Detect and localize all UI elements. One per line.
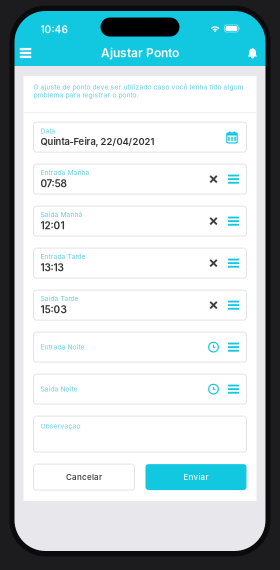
staticText: Saída Manhã [40,211,82,219]
button[interactable]: Cancelar [33,464,134,490]
staticText: Data [40,127,55,135]
staticText: Saída Tarde [40,295,78,303]
button[interactable]: Opções Saída Noite [227,383,239,395]
staticText: O ajuste de ponto deve ser utilizado cas… [33,83,243,99]
button[interactable]: Limpar Saída Tarde [207,299,219,311]
button[interactable]: Opções Entrada Noite [227,341,239,353]
button[interactable]: Selecionar hora Saída Noite [207,383,219,395]
staticText: 10:46 [40,23,67,36]
staticText: Entrada Noite [40,343,84,351]
button[interactable]: Enviar [145,464,246,490]
button[interactable]: Limpar Saída Manhã [207,215,219,227]
button[interactable]: Limpar Entrada Manhã [207,173,219,185]
button[interactable]: Opções Entrada Tarde [227,257,239,269]
staticText: Observação [40,422,80,430]
button[interactable]: Opções Saída Manhã [227,215,239,227]
button[interactable]: Opções Saída Tarde [227,299,239,311]
staticText: Enviar [183,472,208,482]
button[interactable]: Limpar Entrada Tarde [207,257,219,269]
staticText: 07:58 [40,178,66,190]
staticText: Cancelar [66,472,102,482]
button[interactable]: Selecionar data [224,130,239,145]
staticText: 15:03 [40,304,66,316]
staticText: Quinta-Feira, 22/04/2021 [40,136,154,147]
button[interactable]: Opções Entrada Manhã [227,173,239,185]
button[interactable]: Selecionar hora Entrada Noite [207,341,219,353]
button[interactable]: Menu [14,41,36,65]
button[interactable]: Notificações [241,41,263,65]
staticText: Saída Noite [40,385,77,393]
staticText: 13:13 [40,262,63,274]
staticText: Entrada Tarde [40,253,85,261]
staticText: Entrada Manhã [40,169,89,177]
staticText: Ajustar Ponto [101,46,179,60]
staticText: 12:01 [40,220,64,232]
